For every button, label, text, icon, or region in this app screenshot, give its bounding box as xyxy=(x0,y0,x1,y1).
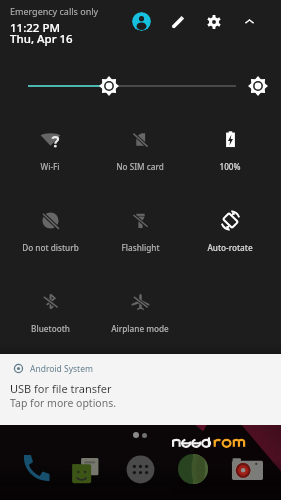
button[interactable]: Wi-Fi xyxy=(5,101,95,182)
staticText: Wi-Fi xyxy=(40,161,60,172)
button[interactable]: Android System xyxy=(0,354,281,425)
staticText: 11:22 PM xyxy=(10,20,61,36)
button[interactable]: Camera xyxy=(231,455,263,487)
staticText: Android System xyxy=(30,363,93,375)
button[interactable]: Flashlight xyxy=(95,182,185,263)
button[interactable]: Browser xyxy=(177,453,209,485)
button[interactable]: Edit xyxy=(170,13,187,30)
button[interactable]: Settings xyxy=(206,14,222,30)
button[interactable]: Phone xyxy=(21,453,51,483)
button[interactable]: Auto-rotate xyxy=(185,182,275,263)
staticText: Do not disturb xyxy=(22,242,79,253)
button[interactable]: Do not disturb xyxy=(5,182,95,263)
staticText: No SIM card xyxy=(116,161,164,172)
staticText: Flashlight xyxy=(121,242,160,253)
staticText: 100% xyxy=(219,161,241,172)
staticText: Airplane mode xyxy=(111,323,169,334)
staticText: Bluetooth xyxy=(31,323,70,334)
button[interactable]: 100% xyxy=(185,101,275,182)
button[interactable]: Brightness xyxy=(99,76,119,96)
staticText: Emergency calls only xyxy=(10,5,99,17)
staticText: Auto-rotate xyxy=(207,242,253,253)
button[interactable]: Account xyxy=(132,12,151,31)
staticText: USB for file transfer xyxy=(10,381,112,396)
button[interactable]: Auto brightness xyxy=(248,76,268,96)
button[interactable]: All apps xyxy=(126,455,155,484)
staticText: Thu, Apr 16 xyxy=(10,31,73,47)
button[interactable]: Bluetooth xyxy=(5,263,95,344)
button[interactable]: No SIM card xyxy=(95,101,185,182)
button[interactable]: Messaging xyxy=(71,458,99,486)
button[interactable]: Airplane mode xyxy=(95,263,185,344)
staticText: Tap for more options. xyxy=(10,396,117,410)
button[interactable]: Collapse quick settings xyxy=(242,14,257,29)
